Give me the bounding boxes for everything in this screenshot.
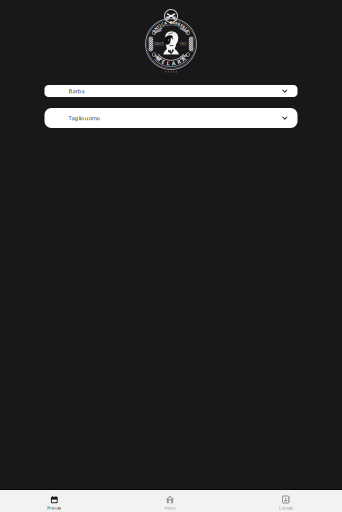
staticText: Taglio uomo bbox=[68, 114, 99, 122]
button[interactable]: Barba bbox=[44, 85, 297, 97]
staticText: A bbox=[181, 55, 185, 62]
staticText: R bbox=[177, 58, 180, 65]
staticText: B bbox=[178, 21, 181, 27]
staticText: A bbox=[153, 28, 156, 33]
staticText: R bbox=[182, 24, 185, 29]
staticText: 1961 bbox=[179, 42, 187, 46]
staticText: Home bbox=[164, 505, 175, 511]
staticText: L bbox=[167, 60, 170, 67]
staticText: Barba bbox=[68, 87, 84, 95]
staticText bbox=[168, 20, 169, 25]
staticText: E bbox=[181, 23, 183, 28]
staticText: E bbox=[162, 58, 165, 65]
staticText: N bbox=[154, 26, 157, 31]
staticText: T bbox=[157, 24, 159, 29]
staticText: M bbox=[156, 55, 161, 62]
button[interactable]: Taglio uomo bbox=[44, 108, 297, 128]
staticText: A bbox=[172, 20, 175, 25]
staticText: A bbox=[164, 21, 167, 26]
staticText: SINCE bbox=[154, 42, 164, 46]
staticText: Prenota bbox=[47, 505, 61, 511]
staticText: C bbox=[161, 21, 164, 27]
staticText: B bbox=[169, 20, 172, 25]
staticText: A bbox=[186, 28, 189, 33]
staticText: I bbox=[159, 23, 161, 28]
button[interactable]: Contatti bbox=[238, 492, 334, 512]
staticText: Contatti bbox=[279, 505, 293, 511]
staticText: I bbox=[185, 26, 187, 31]
button[interactable]: Home bbox=[122, 492, 218, 512]
button[interactable]: Prenota bbox=[6, 492, 102, 512]
staticText: R bbox=[175, 21, 178, 26]
staticText: A bbox=[172, 60, 176, 67]
